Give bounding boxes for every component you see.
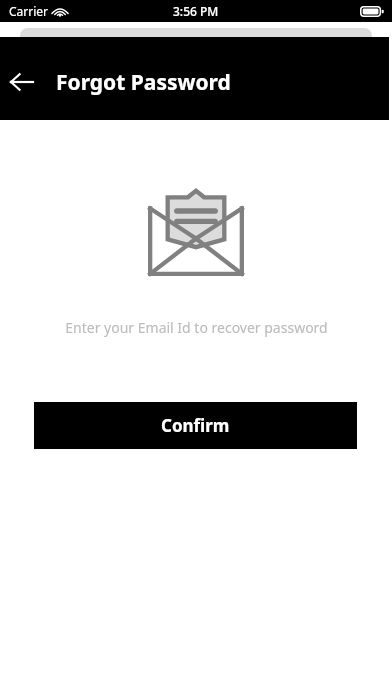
staticText: Carrier [9, 3, 49, 19]
staticText: Forgot Password [56, 68, 231, 97]
button[interactable]: Confirm [34, 402, 357, 449]
staticText: Confirm [161, 414, 230, 437]
staticText: 3:56 PM [173, 3, 219, 19]
button[interactable]: Back [0, 60, 44, 104]
staticText: Enter your Email Id to recover password [65, 318, 328, 337]
